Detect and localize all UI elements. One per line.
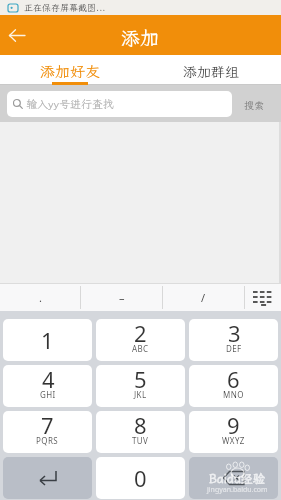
button[interactable]: 搜索 xyxy=(232,85,275,122)
button[interactable] xyxy=(2,21,31,50)
staticText: 9 xyxy=(227,411,240,440)
button[interactable]: 4 xyxy=(3,365,92,407)
staticText: 4 xyxy=(42,365,55,394)
button[interactable]: 5 xyxy=(96,365,185,407)
button[interactable] xyxy=(245,284,281,311)
button[interactable]: 3 xyxy=(189,319,278,361)
staticText: ABC xyxy=(132,343,149,354)
button[interactable]: 1 xyxy=(3,319,92,361)
staticText: JKL xyxy=(134,389,147,400)
staticText: 5 xyxy=(134,365,147,394)
button[interactable]: – xyxy=(81,284,162,311)
staticText: 6 xyxy=(227,365,240,394)
staticText: WXYZ xyxy=(222,435,245,446)
staticText: 输入yy号进行查找 xyxy=(26,97,114,111)
staticText: MNO xyxy=(223,389,244,400)
staticText: 正在保存屏幕截图... xyxy=(24,2,106,14)
button[interactable]: 0 xyxy=(96,457,185,499)
staticText: jingyan.baidu.com xyxy=(207,485,268,495)
staticText: 添加 xyxy=(121,25,160,50)
staticText: 添加好友 xyxy=(40,62,101,82)
button[interactable]: 添加群组 xyxy=(140,55,281,85)
staticText: PQRS xyxy=(36,435,59,446)
staticText: Baidu经验 xyxy=(209,471,265,487)
button[interactable]: / xyxy=(163,284,244,311)
staticText: – xyxy=(119,290,125,305)
button[interactable] xyxy=(189,457,278,499)
staticText: 添加群组 xyxy=(183,63,239,81)
staticText: 1 xyxy=(41,325,54,355)
staticText: . xyxy=(39,290,42,305)
staticText: 0 xyxy=(134,463,147,493)
button[interactable]: 7 xyxy=(3,411,92,453)
button[interactable]: 8 xyxy=(96,411,185,453)
button[interactable]: 9 xyxy=(189,411,278,453)
staticText: 7 xyxy=(41,411,54,440)
staticText: 搜索 xyxy=(244,99,264,112)
staticText: GHI xyxy=(40,389,56,400)
staticText: 2 xyxy=(134,319,147,348)
staticText: TUV xyxy=(132,435,149,446)
button[interactable]: 添加好友 xyxy=(0,55,140,85)
staticText: 8 xyxy=(134,411,147,440)
button[interactable]: . xyxy=(0,284,80,311)
button[interactable] xyxy=(3,457,92,499)
button[interactable]: 2 xyxy=(96,319,185,361)
staticText: 3 xyxy=(228,319,241,348)
staticText: / xyxy=(201,290,206,305)
staticText: DEF xyxy=(226,343,242,354)
button[interactable]: 6 xyxy=(189,365,278,407)
